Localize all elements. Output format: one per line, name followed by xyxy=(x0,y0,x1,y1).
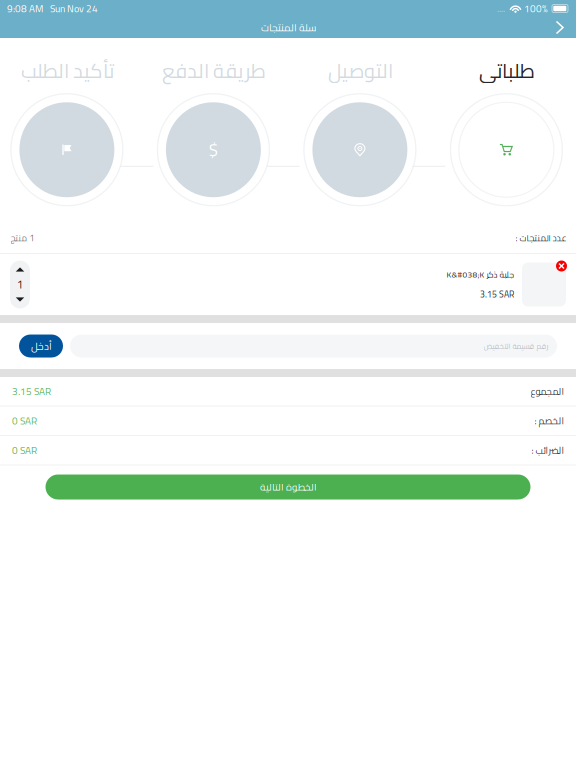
staticText: سلة المنتجات xyxy=(260,18,315,37)
staticText: الخطوة التالية xyxy=(259,478,316,496)
staticText: 3.15 SAR xyxy=(12,382,51,401)
button[interactable]: Remove item xyxy=(555,259,568,272)
staticText: 100% xyxy=(524,0,548,18)
staticText: 3.15 SAR xyxy=(480,286,514,302)
staticText: جلبة ذكر K&#038;K xyxy=(446,267,514,282)
staticText: $ xyxy=(208,133,218,166)
staticText: أدخل xyxy=(30,336,51,355)
staticText: الضرائب : xyxy=(531,441,564,459)
staticText: تأكيد الطلب xyxy=(20,52,113,89)
staticText: 0 SAR xyxy=(12,411,37,430)
staticText: طريقة الدفع xyxy=(161,52,265,89)
staticText: 9:08 AM xyxy=(7,0,43,18)
staticText: التوصيل xyxy=(327,52,392,89)
staticText: عدد المنتجات : xyxy=(515,230,566,246)
staticText: 0 SAR xyxy=(12,441,37,460)
staticText: رقم قسيمة التخفيض xyxy=(483,339,548,353)
staticText: 1 منتج xyxy=(10,230,34,246)
staticText: الخصم : xyxy=(534,412,564,429)
button[interactable]: Decrease quantity xyxy=(10,292,30,306)
staticText: 1 xyxy=(17,274,23,294)
staticText: طلباتى xyxy=(478,52,534,89)
button[interactable]: الخطوة التالية xyxy=(45,474,530,499)
staticText: المجموع xyxy=(530,382,564,400)
staticText: Sun Nov 24 xyxy=(50,0,98,18)
button[interactable]: Increase quantity xyxy=(10,262,30,276)
staticText: .... xyxy=(497,0,505,17)
button[interactable]: أدخل xyxy=(19,334,63,357)
button[interactable]: Back xyxy=(546,17,572,38)
